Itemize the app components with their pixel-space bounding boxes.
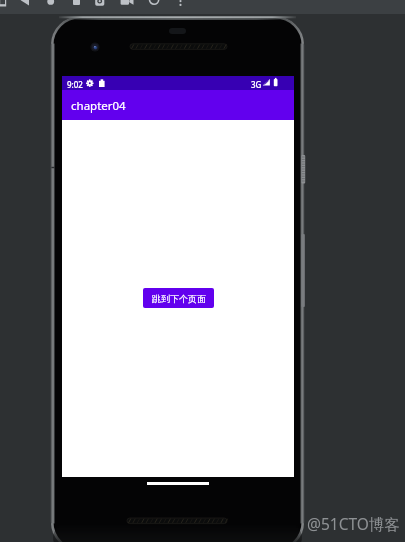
staticText: chapter04 (71, 98, 126, 114)
button[interactable]: Close emulator window (0, 0, 14, 14)
staticText: @51CTO博客 (307, 513, 400, 534)
button[interactable]: Overview (69, 0, 85, 14)
staticText: 9:02 (67, 79, 83, 90)
button[interactable]: Take screenshot (92, 0, 108, 14)
button[interactable]: Rotate (145, 0, 164, 14)
button[interactable]: Home (43, 0, 59, 14)
button[interactable]: Back (17, 0, 33, 14)
staticText: 跳到下个页面 (152, 293, 206, 304)
button[interactable]: 跳到下个页面 (143, 288, 214, 308)
button[interactable]: Record screen (117, 0, 137, 14)
button[interactable]: More options (174, 0, 188, 14)
staticText: 3G (251, 79, 262, 90)
